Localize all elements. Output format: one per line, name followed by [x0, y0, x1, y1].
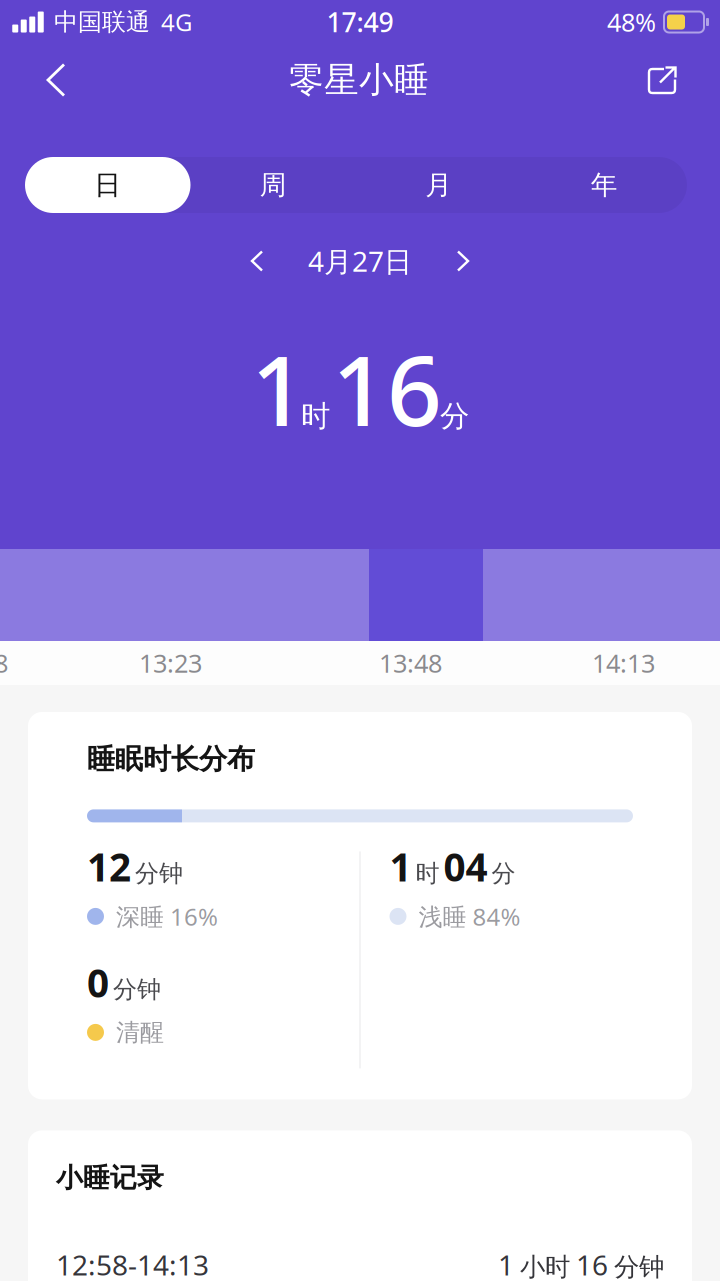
button[interactable]: 周	[190, 157, 356, 213]
staticText: 年	[591, 169, 618, 201]
staticText: 分	[440, 398, 469, 434]
button[interactable]: Next day	[435, 239, 491, 283]
staticText: 分钟	[135, 859, 183, 888]
staticText: 14:13	[592, 646, 655, 680]
staticText: 13:23	[139, 646, 202, 680]
staticText: 睡眠时长分布	[87, 742, 255, 776]
button[interactable]: 年	[521, 157, 687, 213]
staticText: 48%	[607, 5, 656, 39]
staticText: 12	[87, 841, 131, 892]
staticText: 分	[491, 859, 515, 888]
staticText: 16	[332, 325, 442, 452]
button[interactable]: Back	[25, 49, 87, 111]
staticText: 日	[94, 169, 121, 201]
staticText: 4G	[161, 6, 192, 38]
staticText: 16	[576, 1246, 608, 1281]
staticText: 0	[87, 957, 109, 1008]
staticText: 月	[425, 169, 452, 201]
staticText: 13:48	[379, 646, 442, 680]
staticText: 小时	[520, 1252, 570, 1281]
staticText: 清醒	[116, 1018, 164, 1047]
button[interactable]: Previous day	[229, 239, 285, 283]
staticText: 12:58	[0, 646, 8, 680]
staticText: 浅睡 84%	[418, 900, 520, 932]
staticText: 时	[301, 398, 330, 434]
staticText: 零星小睡	[289, 59, 429, 101]
staticText: 12:58-14:13	[56, 1246, 209, 1281]
staticText: 分钟	[614, 1252, 664, 1281]
button[interactable]: 日	[25, 157, 190, 213]
staticText: 分钟	[113, 975, 161, 1004]
staticText: 深睡 16%	[116, 900, 218, 932]
staticText: 周	[260, 169, 287, 201]
staticText: 1	[251, 325, 306, 452]
staticText: 17:49	[326, 4, 393, 40]
staticText: 小睡记录	[56, 1161, 164, 1194]
staticText: 1	[498, 1246, 514, 1281]
staticText: 1	[389, 841, 411, 892]
staticText: 4月27日	[308, 242, 412, 280]
staticText: 时	[415, 859, 439, 888]
staticText: 中国联通	[54, 7, 150, 37]
button[interactable]: 月	[356, 157, 521, 213]
button[interactable]: Share	[631, 49, 693, 111]
staticText: 04	[443, 841, 487, 892]
